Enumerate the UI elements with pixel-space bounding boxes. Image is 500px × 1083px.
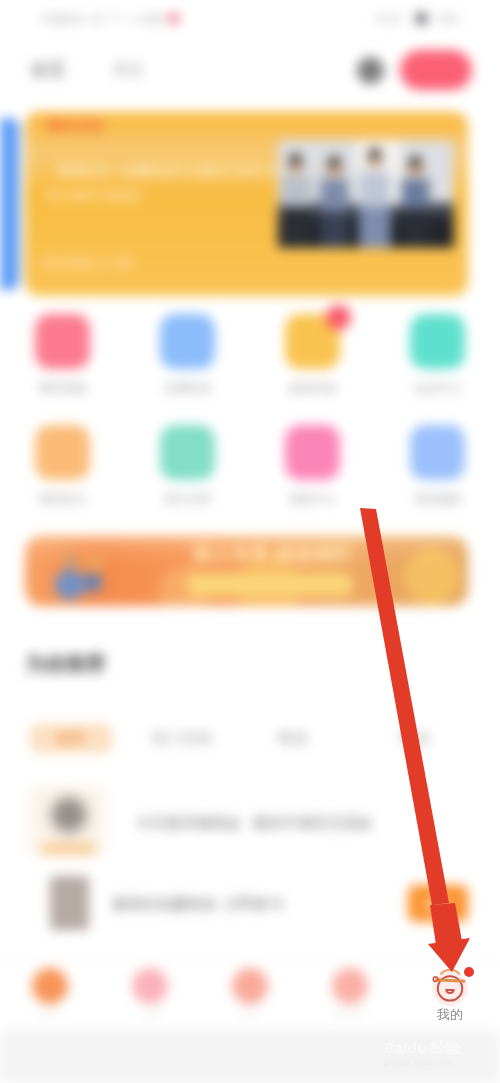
staticText: 热门活动 xyxy=(152,729,212,748)
button[interactable]: Sign in xyxy=(400,50,472,90)
staticText: 关注 xyxy=(112,60,144,80)
staticText: 更多服务 xyxy=(414,491,462,506)
staticText: 超值优选 xyxy=(289,380,337,395)
button[interactable]: 我的 xyxy=(400,962,500,1022)
button[interactable]: 推荐 xyxy=(30,724,112,753)
button[interactable]: 今日签到领现金 最高可领百元现金 xyxy=(29,786,474,858)
button[interactable]: 每日任务 xyxy=(125,425,250,506)
staticText: 我的 xyxy=(437,1006,463,1022)
button[interactable]: 新人专享 超值福利 xyxy=(25,536,468,606)
button[interactable]: 首页 xyxy=(0,962,100,1020)
button[interactable]: 会员中心 xyxy=(375,314,500,395)
button[interactable]: 领取 xyxy=(408,885,468,922)
staticText: 领取 xyxy=(425,896,451,912)
staticText: 邀请好友赚奖励 立即参与 xyxy=(111,893,284,913)
staticText: 今日签到领现金 最高可领百元现金 xyxy=(136,812,373,832)
button[interactable]: 超值优选 xyxy=(250,314,375,395)
staticText: 限时抢购 xyxy=(39,380,87,395)
staticText: 领券中心 xyxy=(289,491,337,506)
button[interactable]: 关注 xyxy=(110,52,146,88)
button[interactable]: 为你推荐 xyxy=(25,652,105,677)
staticText: · 每日签到可领现金 xyxy=(41,187,144,203)
button[interactable]: 签到有礼 xyxy=(0,425,125,506)
staticText: 品牌特卖 xyxy=(164,380,212,395)
button[interactable]: Search xyxy=(357,57,384,84)
button[interactable]: 首页 xyxy=(28,51,68,90)
staticText: 中国移动 4G ᴴᴰ ⬝⬝⬝⬝ 消息 xyxy=(40,11,163,26)
staticText: 限时活动 xyxy=(47,118,103,136)
staticText: 首页 xyxy=(39,1006,61,1020)
staticText: 为你推荐 xyxy=(25,652,105,677)
staticText: 推荐 xyxy=(57,730,85,748)
button[interactable]: 新品 xyxy=(400,724,430,753)
button[interactable]: 更多服务 xyxy=(375,425,500,506)
staticText: 新品 xyxy=(400,729,430,748)
button[interactable]: 分类 xyxy=(100,962,200,1020)
staticText: 会员中心 xyxy=(414,380,462,395)
staticText: 分类 xyxy=(139,1006,161,1020)
staticText: 新人专享 超值福利 xyxy=(193,541,350,567)
staticText: 邀请好友一起赚现金红包最高可得百元 xyxy=(57,162,278,178)
button[interactable]: 发现 xyxy=(200,962,300,1020)
button[interactable]: 精选 xyxy=(278,724,308,753)
button[interactable]: 限时抢购 xyxy=(0,314,125,395)
button[interactable]: 购物车 xyxy=(300,962,400,1020)
button[interactable]: 限时活动 xyxy=(25,112,468,296)
button[interactable]: 品牌特卖 xyxy=(125,314,250,395)
button[interactable]: 领券中心 xyxy=(250,425,375,506)
button[interactable]: 邀请好友赚奖励 立即参与 xyxy=(50,876,468,930)
staticText: 发现 xyxy=(239,1006,261,1020)
staticText: 现金奖励天天领 xyxy=(41,254,132,270)
staticText: 精选 xyxy=(278,729,308,748)
staticText: 签到有礼 xyxy=(39,491,87,506)
staticText: 购物车 xyxy=(334,1006,367,1020)
staticText: 首页 xyxy=(30,59,66,82)
button[interactable]: 热门活动 xyxy=(152,724,212,753)
